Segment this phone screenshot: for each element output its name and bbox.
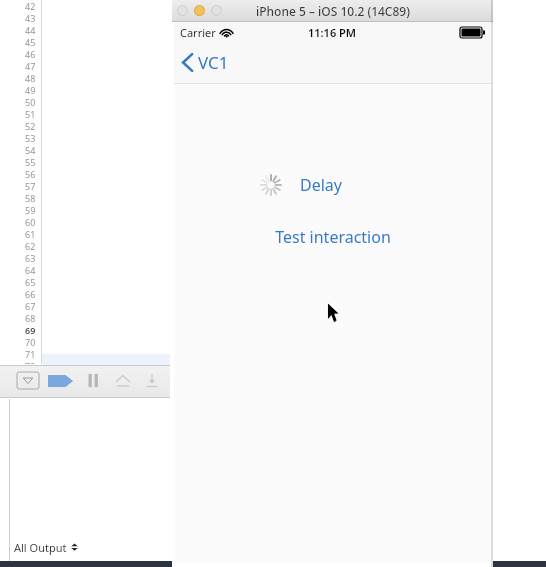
staticText: 70 [25,336,36,348]
staticText: 58 [25,192,36,204]
staticText: 50 [25,96,36,108]
staticText: 71 [25,348,36,360]
staticText: 62 [25,240,36,252]
button[interactable]: Step over [114,373,132,388]
staticText: 56 [25,168,36,180]
staticText: 52 [25,120,36,132]
staticText: 46 [25,48,36,60]
staticText: VC1 [198,51,229,74]
staticText: 42 [25,0,36,12]
staticText: 49 [25,84,36,96]
button[interactable]: Delay [300,174,342,196]
staticText: 61 [25,228,36,240]
staticText: Delay [300,174,342,196]
staticText: 54 [25,144,36,156]
staticText: 68 [25,312,36,324]
button[interactable]: Step into [144,373,160,388]
staticText: 55 [25,156,36,168]
button[interactable]: Close [177,5,188,16]
staticText: 53 [25,132,36,144]
staticText: 69 [25,324,36,336]
staticText: 72 [25,360,36,364]
staticText: 48 [25,72,36,84]
staticText: Carrier [180,25,216,40]
staticText: Test interaction [275,226,391,248]
button[interactable]: All Output [14,538,79,556]
staticText: 60 [25,216,36,228]
button[interactable]: Test interaction [269,224,397,250]
staticText: 59 [25,204,36,216]
staticText: 45 [25,36,36,48]
staticText: 64 [25,264,36,276]
staticText: 67 [25,300,36,312]
button[interactable]: Pause [86,372,102,389]
button[interactable]: Breakpoints [48,375,73,387]
button[interactable]: Toggle debug area [17,372,39,389]
staticText: iPhone 5 – iOS 10.2 (14C89) [256,3,410,19]
staticText: 63 [25,252,36,264]
staticText: 66 [25,288,36,300]
button[interactable]: VC1 [182,51,229,74]
staticText: 65 [25,276,36,288]
staticText: 57 [25,180,36,192]
staticText: 47 [25,60,36,72]
button[interactable]: Minimize [194,5,205,16]
staticText: 51 [25,108,36,120]
staticText: 44 [25,24,36,36]
staticText: All Output [14,540,67,555]
staticText: 11:16 PM [308,25,357,40]
staticText: 43 [25,12,36,24]
button[interactable]: Zoom [211,5,222,16]
